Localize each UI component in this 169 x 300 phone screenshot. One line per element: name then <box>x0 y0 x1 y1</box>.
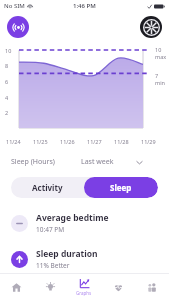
button[interactable]: Last week <box>81 155 143 169</box>
staticText: Average bedtime <box>36 212 109 224</box>
staticText: 10 <box>5 47 12 54</box>
staticText: 7 <box>155 72 159 79</box>
button[interactable]: Average bedtime <box>0 210 169 236</box>
staticText: 11/25 <box>33 138 48 145</box>
button[interactable]: Home <box>0 274 33 300</box>
staticText: Graphs <box>76 290 92 296</box>
staticText: Last week <box>81 157 114 167</box>
button[interactable]: Sleep duration <box>0 246 169 272</box>
staticText: 1:46 PM <box>73 2 96 10</box>
staticText: 11/28 <box>114 138 129 145</box>
staticText: Sleep <box>110 182 132 193</box>
staticText: No SIM <box>4 2 25 10</box>
staticText: Sleep duration <box>36 248 98 260</box>
staticText: 4 <box>5 94 9 101</box>
staticText: 11/26 <box>60 138 75 145</box>
staticText: max <box>155 53 167 60</box>
staticText: 10 <box>155 46 162 53</box>
button[interactable]: Activity <box>11 177 84 198</box>
staticText: Sleep (Hours) <box>11 157 55 167</box>
staticText: 11% Better <box>36 261 70 270</box>
button[interactable]: Live tracking <box>7 16 29 38</box>
staticText: min <box>155 79 165 86</box>
staticText: 11/27 <box>87 138 102 145</box>
staticText: 11/24 <box>6 138 21 145</box>
staticText: Activity <box>32 182 63 193</box>
staticText: 2 <box>5 109 9 116</box>
staticText: 8 <box>5 62 9 69</box>
button[interactable]: Insights <box>33 274 67 300</box>
staticText: 6 <box>5 78 9 85</box>
button[interactable]: Profile <box>140 16 162 38</box>
button[interactable]: Sleep <box>84 177 158 198</box>
button[interactable]: Community <box>135 274 169 300</box>
staticText: 11/29 <box>141 138 156 145</box>
button[interactable]: Heart <box>101 274 135 300</box>
staticText: 10:47 PM <box>36 225 65 234</box>
button[interactable]: Graphs <box>67 274 101 300</box>
